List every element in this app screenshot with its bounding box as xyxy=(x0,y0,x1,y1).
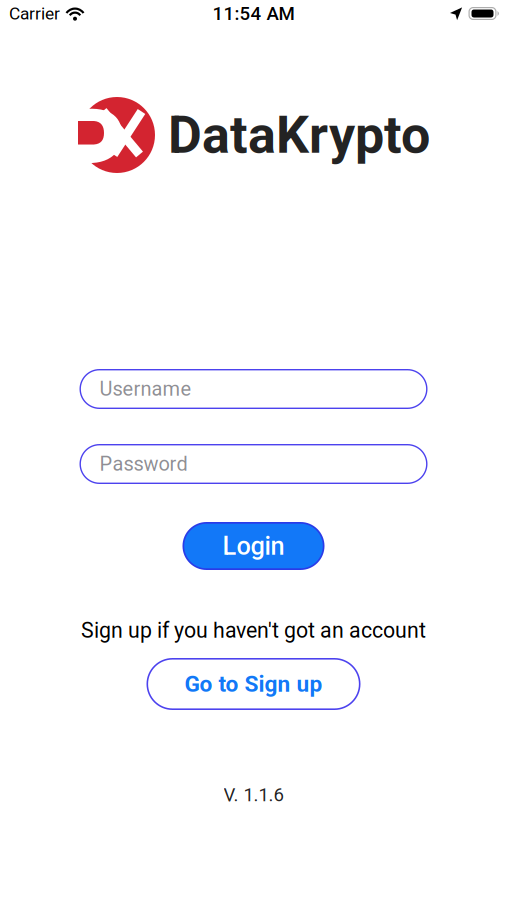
button[interactable]: Login xyxy=(182,522,324,570)
staticText: 11:54 AM xyxy=(212,3,294,24)
staticText: Username xyxy=(99,377,191,401)
staticText: Carrier xyxy=(9,3,60,24)
staticText: Sign up if you haven't got an account xyxy=(81,618,426,643)
staticText: Go to Sign up xyxy=(184,671,322,697)
staticText: DataKrypto xyxy=(168,104,430,165)
button[interactable]: Password xyxy=(79,444,427,484)
button[interactable]: Username xyxy=(79,369,427,409)
button[interactable]: Go to Sign up xyxy=(146,658,360,710)
staticText: Login xyxy=(222,531,284,561)
staticText: Password xyxy=(99,452,187,476)
staticText: V. 1.1.6 xyxy=(223,784,283,806)
